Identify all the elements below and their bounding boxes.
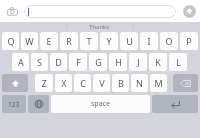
staticText: D bbox=[55, 56, 62, 68]
button[interactable]: P bbox=[180, 32, 198, 50]
staticText: Thanks bbox=[89, 23, 110, 31]
button[interactable]: X bbox=[55, 74, 72, 92]
button[interactable]: T bbox=[80, 32, 98, 50]
button[interactable]: E bbox=[40, 32, 58, 50]
staticText: H bbox=[115, 56, 122, 68]
button[interactable]: C bbox=[74, 74, 91, 92]
button[interactable]: L bbox=[169, 53, 187, 71]
staticText: M bbox=[154, 77, 163, 89]
staticText: L bbox=[176, 56, 181, 68]
button[interactable]: R bbox=[60, 32, 78, 50]
staticText: Z bbox=[41, 77, 47, 89]
button[interactable]: Z bbox=[35, 74, 53, 92]
staticText: I bbox=[147, 35, 151, 47]
button[interactable]: J bbox=[129, 53, 147, 71]
button[interactable]: K bbox=[149, 53, 167, 71]
staticText: E bbox=[46, 35, 52, 47]
button[interactable]: space bbox=[51, 95, 150, 113]
staticText: U bbox=[126, 35, 133, 47]
button[interactable]: S bbox=[31, 53, 48, 71]
button[interactable]: Backspace bbox=[173, 74, 198, 92]
staticText: 123 bbox=[8, 100, 20, 109]
button[interactable]: I bbox=[140, 32, 158, 50]
button[interactable]: B bbox=[112, 74, 129, 92]
button[interactable]: Q bbox=[2, 32, 19, 50]
staticText: K bbox=[155, 56, 161, 68]
staticText: A bbox=[18, 56, 24, 68]
button[interactable]: O bbox=[160, 32, 178, 50]
button[interactable]: G bbox=[89, 53, 107, 71]
staticText: P bbox=[186, 35, 192, 47]
button[interactable]: Camera bbox=[3, 2, 21, 20]
staticText: B bbox=[118, 77, 124, 89]
button[interactable]: Return bbox=[152, 95, 198, 113]
staticText: S bbox=[37, 56, 42, 68]
staticText: Q bbox=[7, 35, 15, 47]
button[interactable]: W bbox=[21, 32, 38, 50]
button[interactable]: Shift bbox=[2, 74, 28, 92]
button[interactable]: D bbox=[50, 53, 67, 71]
staticText: X bbox=[61, 77, 67, 89]
button[interactable]: A bbox=[12, 53, 29, 71]
staticText: space bbox=[91, 99, 110, 109]
button[interactable]: U bbox=[120, 32, 138, 50]
staticText: N bbox=[136, 77, 143, 89]
button[interactable]: M bbox=[150, 74, 167, 92]
staticText: V bbox=[99, 77, 105, 89]
staticText: J bbox=[137, 56, 140, 68]
staticText: T bbox=[86, 35, 92, 47]
button[interactable]: H bbox=[109, 53, 127, 71]
button[interactable]: Thanks bbox=[66, 22, 133, 31]
staticText: C bbox=[80, 77, 86, 89]
staticText: W bbox=[25, 35, 34, 47]
staticText: O bbox=[165, 35, 173, 47]
button[interactable]: F bbox=[69, 53, 87, 71]
button[interactable]: 123 bbox=[2, 95, 26, 113]
button[interactable] bbox=[24, 5, 176, 18]
staticText: Y bbox=[106, 35, 112, 47]
button[interactable]: N bbox=[131, 74, 148, 92]
button[interactable]: Send bbox=[181, 3, 197, 19]
staticText: G bbox=[95, 56, 102, 68]
staticText: F bbox=[76, 56, 81, 68]
button[interactable]: Change keyboard language bbox=[28, 95, 49, 113]
button[interactable]: V bbox=[93, 74, 110, 92]
button[interactable]: Y bbox=[100, 32, 118, 50]
staticText: R bbox=[66, 35, 72, 47]
